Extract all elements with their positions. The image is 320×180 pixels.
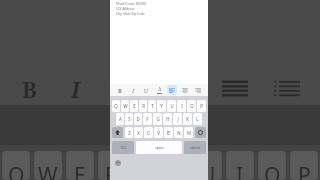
staticText: I — [181, 103, 183, 109]
button[interactable]: Align 0 — [167, 85, 177, 95]
staticText: U — [112, 74, 128, 104]
button[interactable]: G — [153, 113, 162, 125]
staticText: O — [190, 103, 194, 109]
button[interactable]: B — [164, 127, 173, 138]
button[interactable]: P — [197, 100, 206, 112]
button[interactable]: Delete — [195, 127, 206, 138]
button[interactable]: 123 — [112, 141, 134, 154]
staticText: G — [156, 116, 160, 122]
staticText: U — [170, 103, 174, 109]
staticText: I — [236, 161, 244, 180]
staticText: S — [128, 116, 131, 122]
staticText: 123 Address — [116, 7, 135, 11]
button[interactable]: Y — [157, 100, 166, 112]
button[interactable]: Q — [112, 100, 120, 112]
staticText: 123 — [120, 146, 126, 150]
button[interactable]: R — [139, 100, 147, 112]
button[interactable]: Shift — [112, 127, 123, 138]
button[interactable]: F — [143, 113, 152, 125]
button[interactable]: Align 1 — [180, 85, 190, 95]
staticText: R — [142, 103, 145, 109]
button[interactable]: A — [116, 113, 124, 125]
staticText: B — [167, 130, 170, 136]
staticText: I — [71, 74, 80, 104]
staticText: P — [200, 103, 203, 109]
staticText: W — [123, 103, 128, 109]
button[interactable]: W — [121, 100, 129, 112]
staticText: H — [166, 116, 170, 122]
staticText: J — [177, 116, 179, 122]
staticText: F — [146, 116, 149, 122]
button[interactable]: Underline — [141, 85, 151, 95]
staticText: P — [298, 161, 311, 180]
staticText: R — [105, 161, 119, 180]
button[interactable]: Emoji — [114, 159, 121, 166]
staticText: B — [118, 87, 122, 94]
button[interactable]: T — [148, 100, 156, 112]
button[interactable]: C — [144, 127, 153, 138]
staticText: M — [187, 130, 191, 136]
button[interactable]: I — [177, 100, 186, 112]
button[interactable]: Align 2 — [193, 85, 203, 95]
staticText: Y — [160, 103, 163, 109]
staticText: B — [22, 74, 37, 104]
button[interactable]: return — [184, 141, 206, 154]
staticText: E — [74, 161, 86, 180]
button[interactable]: Z — [125, 127, 133, 138]
staticText: U — [144, 87, 148, 94]
staticText: A — [119, 116, 122, 122]
button[interactable]: space — [136, 141, 182, 154]
button[interactable]: Bold — [115, 85, 125, 95]
staticText: E — [133, 103, 136, 109]
staticText: D — [136, 116, 140, 122]
staticText: I — [132, 87, 135, 94]
button[interactable]: J — [173, 113, 182, 125]
staticText: C — [147, 130, 150, 136]
staticText: A — [158, 86, 162, 93]
staticText: N — [177, 130, 181, 136]
button[interactable]: Text color — [154, 85, 164, 95]
button[interactable]: L — [193, 113, 202, 125]
staticText: V — [157, 130, 160, 136]
staticText: W — [38, 161, 58, 180]
staticText: Q — [8, 161, 25, 180]
staticText: space — [155, 146, 164, 150]
button[interactable]: N — [174, 127, 183, 138]
staticText: Q — [114, 103, 118, 109]
button[interactable]: D — [134, 113, 142, 125]
button[interactable]: V — [154, 127, 163, 138]
staticText: K — [186, 116, 189, 122]
button[interactable]: O — [187, 100, 196, 112]
staticText: return — [190, 146, 200, 150]
button[interactable]: Italic — [128, 85, 138, 95]
button[interactable]: K — [183, 113, 192, 125]
button[interactable]: M — [184, 127, 193, 138]
staticText: U — [200, 161, 216, 180]
staticText: X — [137, 130, 140, 136]
button[interactable]: H — [163, 113, 172, 125]
button[interactable]: E — [130, 100, 138, 112]
staticText: Word Count: 80,000 — [116, 2, 146, 6]
staticText: City, State Zip Code — [116, 12, 145, 16]
staticText: O — [264, 161, 281, 180]
button[interactable]: U — [167, 100, 176, 112]
staticText: T — [151, 103, 154, 109]
button[interactable]: S — [125, 113, 133, 125]
staticText: L — [196, 116, 199, 122]
staticText: Z — [128, 130, 131, 136]
button[interactable]: X — [134, 127, 143, 138]
